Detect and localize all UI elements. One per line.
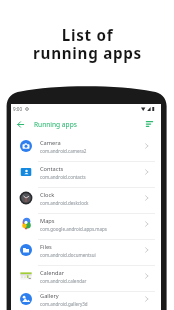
button[interactable]: Files	[11, 239, 161, 265]
button[interactable]: Contacts	[11, 161, 161, 187]
staticText: Maps	[40, 217, 55, 225]
staticText: com.android.documentsui	[40, 252, 96, 258]
button[interactable]: Clock	[11, 187, 161, 213]
staticText: com.android.deskclock	[40, 200, 89, 206]
staticText: com.google.android.apps.maps	[40, 226, 107, 232]
staticText: Clock	[40, 191, 55, 199]
staticText: 9:00	[13, 106, 23, 112]
staticText: Camera	[40, 139, 61, 147]
button[interactable]: Gallery	[11, 291, 161, 310]
staticText: Contacts	[40, 165, 64, 173]
staticText: Running apps	[34, 120, 77, 129]
button[interactable]: Calendar	[11, 265, 161, 291]
staticText: com.android.calendar	[40, 278, 87, 284]
staticText: com.android.camera2	[40, 148, 87, 154]
staticText: com.android.gallery3d	[40, 301, 88, 307]
button[interactable]: Camera	[11, 135, 161, 161]
staticText: com.android.contacts	[40, 174, 86, 180]
staticText: Gallery	[40, 292, 59, 300]
button[interactable]: Sort	[143, 117, 155, 131]
staticText: Calendar	[40, 269, 65, 277]
staticText: List of running apps	[33, 25, 142, 64]
button[interactable]: Maps	[11, 213, 161, 239]
staticText: Files	[40, 243, 52, 251]
button[interactable]: Back	[15, 117, 26, 131]
